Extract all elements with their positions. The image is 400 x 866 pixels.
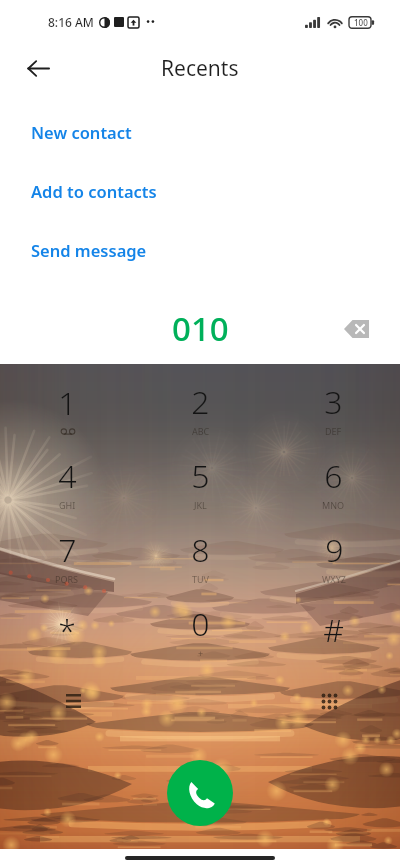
staticText: JKL <box>194 499 207 511</box>
button[interactable]: * <box>0 593 134 667</box>
staticText: 5 <box>191 454 210 498</box>
button[interactable]: Dialpad <box>267 667 400 721</box>
staticText: 6 <box>324 454 343 498</box>
button[interactable]: 2 <box>134 371 267 445</box>
button[interactable]: Back <box>14 44 62 92</box>
staticText: GHI <box>59 499 76 511</box>
staticText: # <box>323 608 344 652</box>
staticText: Add to contacts <box>31 180 157 202</box>
button[interactable]: New contact <box>0 102 400 161</box>
staticText: Recents <box>161 54 239 83</box>
staticText: 8:16 AM <box>48 14 94 30</box>
staticText: TUV <box>192 573 209 585</box>
button[interactable]: 8 <box>134 519 267 593</box>
staticText: 3 <box>324 380 343 424</box>
staticText: 8 <box>191 528 210 572</box>
button[interactable]: Add to contacts <box>0 161 400 220</box>
staticText: * <box>58 608 76 652</box>
staticText: 4 <box>58 454 77 498</box>
button[interactable]: # <box>267 593 400 667</box>
staticText: 1 <box>58 381 77 425</box>
staticText: PQRS <box>55 573 79 585</box>
staticText: 7 <box>58 528 77 572</box>
staticText: 2 <box>191 380 210 424</box>
button[interactable]: 0 <box>134 593 267 667</box>
staticText: 0 <box>191 602 210 646</box>
button[interactable]: 1 <box>0 371 134 445</box>
button[interactable]: Call history <box>0 667 134 721</box>
staticText: 100 <box>354 17 368 28</box>
staticText: 9 <box>325 528 344 572</box>
button[interactable]: Send message <box>0 220 400 279</box>
staticText: DEF <box>325 425 342 437</box>
button[interactable]: 6 <box>267 445 400 519</box>
button[interactable]: Call <box>167 760 233 826</box>
staticText: 010 <box>172 306 229 351</box>
button[interactable]: 4 <box>0 445 134 519</box>
button[interactable]: Backspace <box>334 307 378 351</box>
button[interactable]: 9 <box>267 519 400 593</box>
button[interactable]: 7 <box>0 519 134 593</box>
staticText: WXYZ <box>322 573 346 585</box>
button[interactable]: 5 <box>134 445 267 519</box>
staticText: Send message <box>31 239 147 261</box>
staticText: ABC <box>192 425 210 437</box>
staticText: MNO <box>322 499 345 511</box>
staticText: + <box>198 647 204 659</box>
staticText: New contact <box>31 121 132 143</box>
button[interactable]: 3 <box>267 371 400 445</box>
